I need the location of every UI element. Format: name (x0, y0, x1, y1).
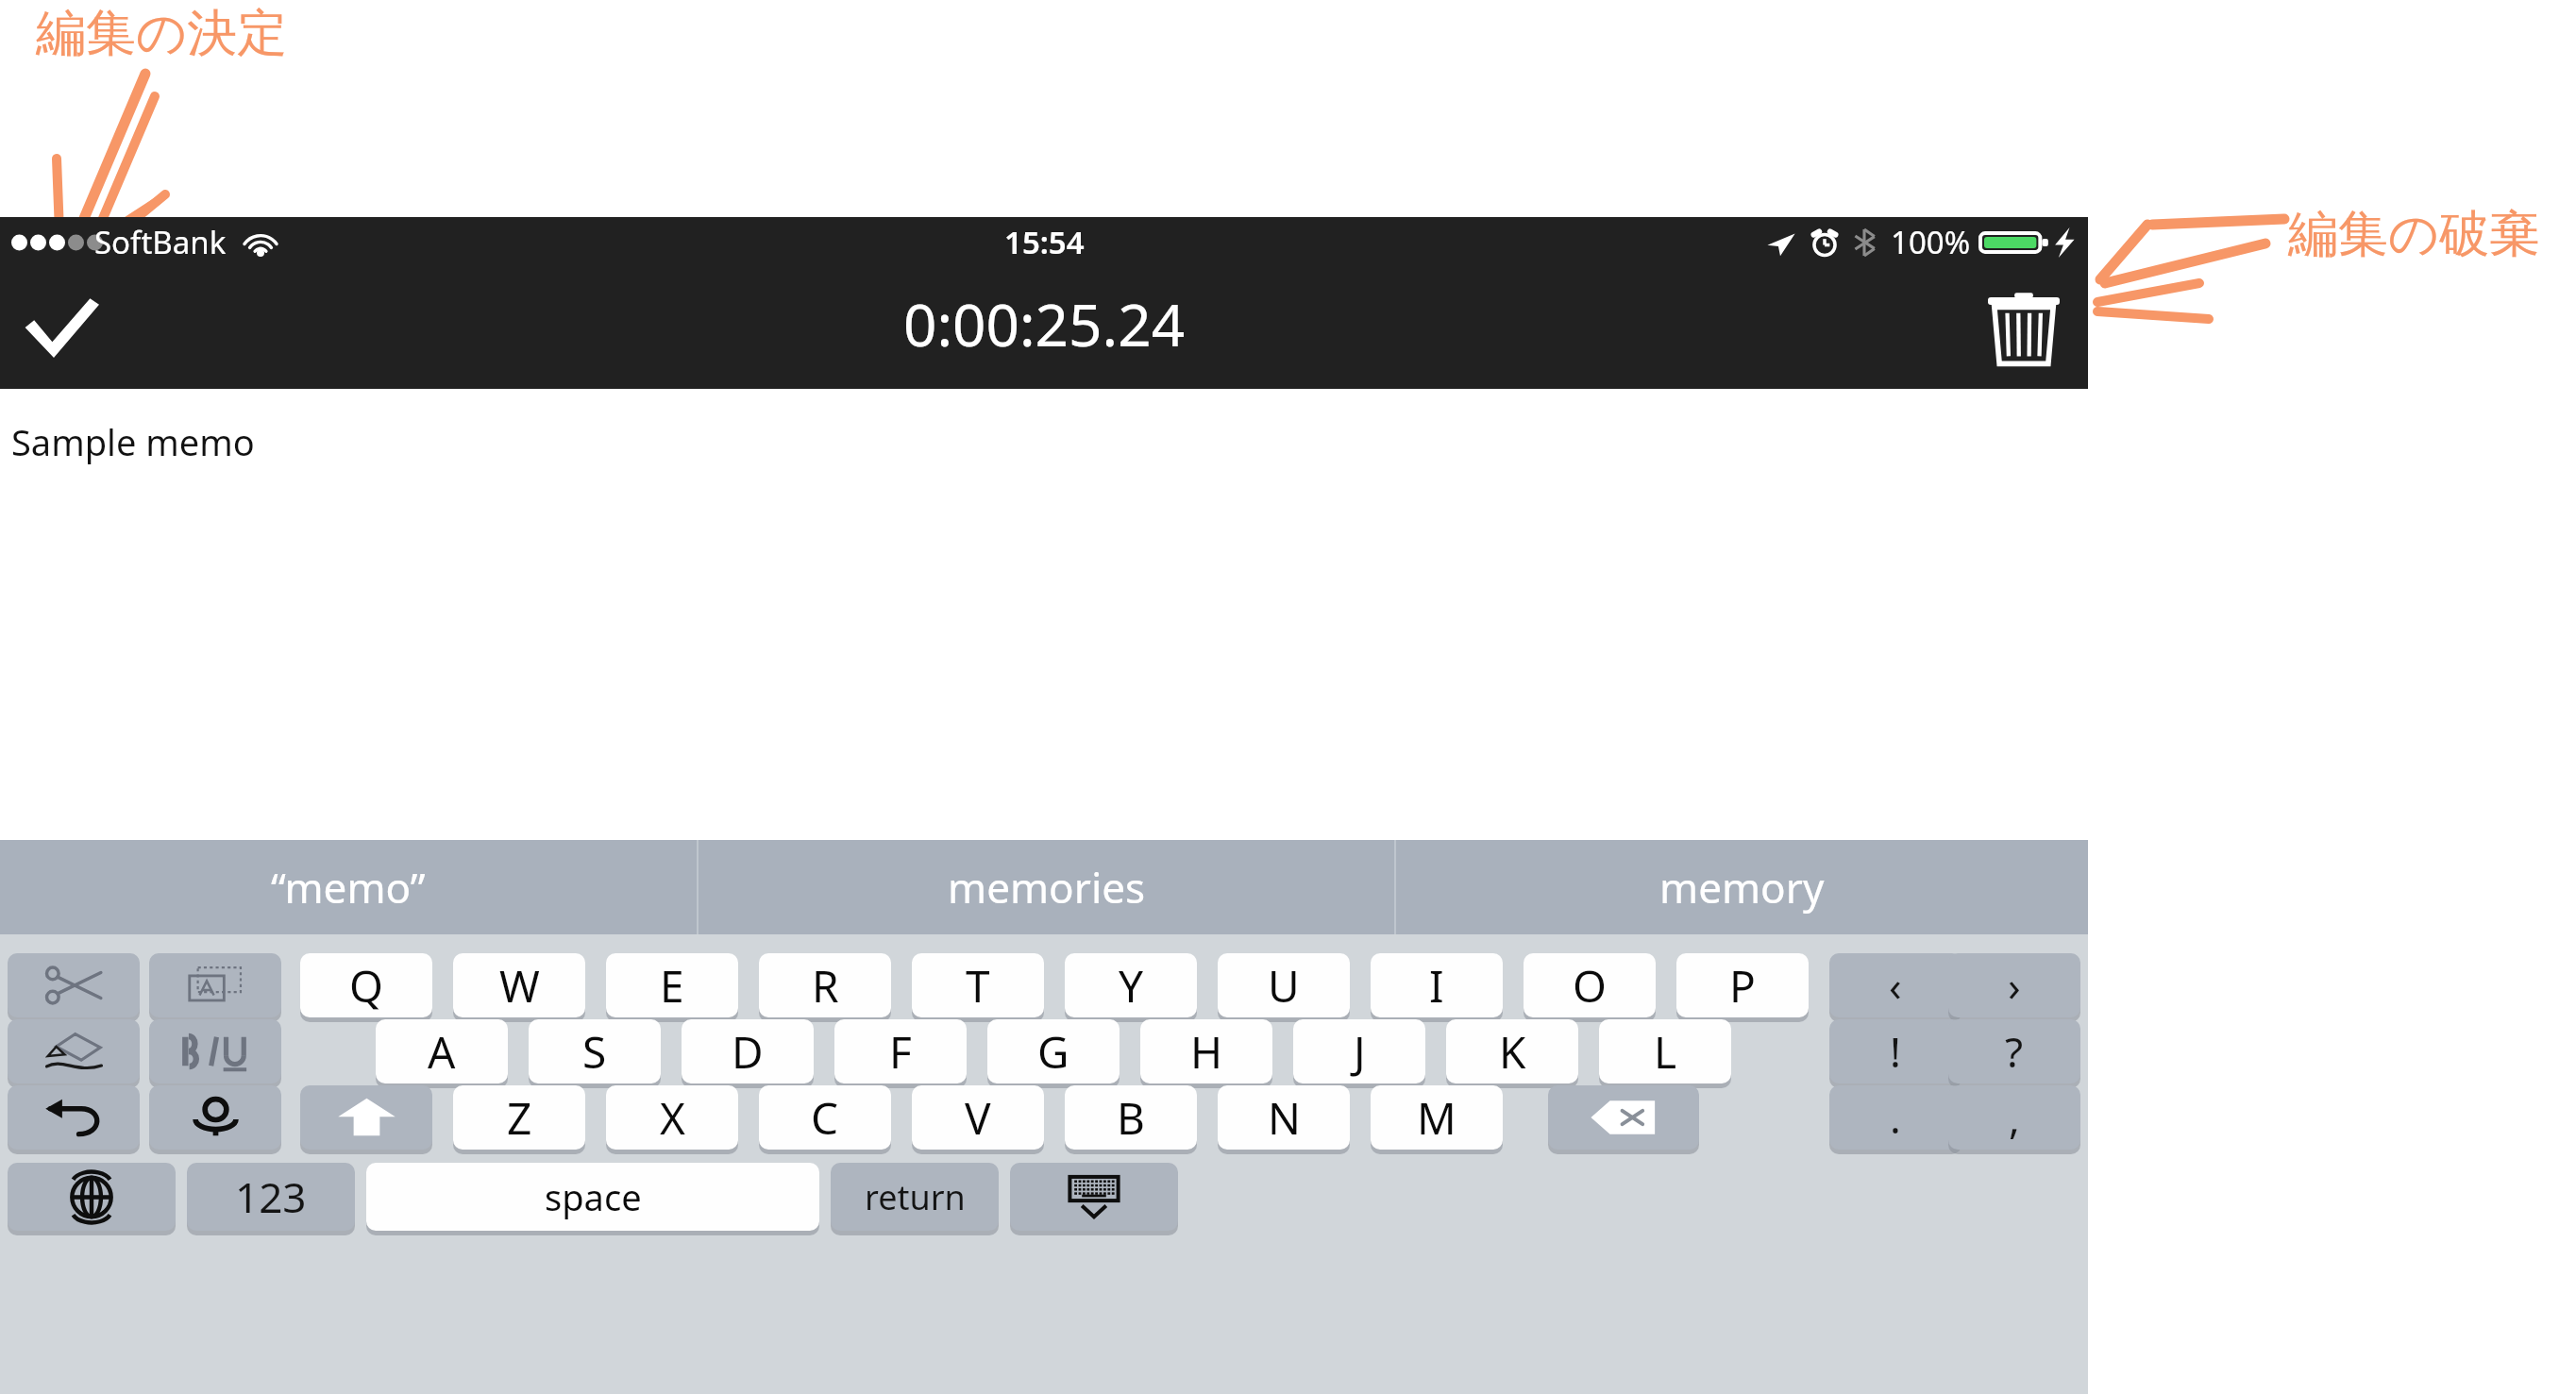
staticText: 123 (235, 1168, 307, 1225)
staticText: P (1729, 956, 1756, 1016)
staticText: V (965, 1088, 991, 1148)
button[interactable]: I (1371, 953, 1503, 1017)
staticText: 15:54 (1004, 221, 1085, 263)
button[interactable]: J (1293, 1019, 1425, 1083)
staticText: H (1190, 1022, 1223, 1082)
button[interactable] (1010, 1163, 1178, 1231)
button[interactable]: ‹ (1829, 953, 1961, 1017)
staticText: memory (1659, 859, 1825, 915)
button[interactable]: B (1065, 1085, 1197, 1150)
button[interactable]: R (759, 953, 891, 1017)
staticText: ! (1890, 1023, 1901, 1080)
button[interactable]: C (759, 1085, 891, 1150)
button[interactable]: N (1218, 1085, 1350, 1150)
staticText: W (499, 956, 540, 1016)
staticText: F (889, 1022, 912, 1082)
button[interactable]: H (1140, 1019, 1272, 1083)
staticText: , (2009, 1089, 2020, 1146)
button[interactable]: W (453, 953, 585, 1017)
button[interactable]: X (606, 1085, 738, 1150)
button[interactable]: return (831, 1163, 999, 1231)
button[interactable] (149, 1019, 281, 1083)
staticText: Y (1119, 956, 1144, 1016)
button[interactable]: F (834, 1019, 967, 1083)
button[interactable]: P (1676, 953, 1809, 1017)
staticText: 0:00:25.24 (903, 284, 1186, 363)
button[interactable]: . (1829, 1085, 1961, 1150)
button[interactable]: memories (699, 840, 1394, 934)
staticText: X (660, 1088, 685, 1148)
button[interactable] (8, 1019, 140, 1083)
button[interactable]: Q (300, 953, 432, 1017)
button[interactable]: U (1218, 953, 1350, 1017)
staticText: ‹ (1889, 957, 1902, 1014)
staticText: O (1573, 956, 1607, 1016)
button[interactable] (8, 953, 140, 1017)
button[interactable]: K (1446, 1019, 1578, 1083)
button[interactable]: , (1948, 1085, 2080, 1150)
staticText: 100% (1891, 221, 1971, 263)
staticText: K (1499, 1022, 1526, 1082)
staticText: N (1268, 1088, 1301, 1148)
button[interactable]: G (987, 1019, 1120, 1083)
button[interactable] (149, 953, 281, 1017)
staticText: R (812, 956, 839, 1016)
staticText: L (1654, 1022, 1677, 1082)
button[interactable]: Confirm edit (9, 276, 113, 379)
staticText: U (1268, 956, 1300, 1016)
button[interactable] (1548, 1085, 1699, 1150)
button[interactable]: A (376, 1019, 508, 1083)
staticText: Sample memo (11, 417, 255, 466)
staticText: SoftBank (94, 221, 227, 263)
staticText: I (1429, 956, 1444, 1016)
button[interactable]: memory (1396, 840, 2088, 934)
button[interactable]: Z (453, 1085, 585, 1150)
button[interactable]: Y (1065, 953, 1197, 1017)
button[interactable]: S (529, 1019, 661, 1083)
staticText: A (428, 1022, 456, 1082)
staticText: E (660, 956, 684, 1016)
button[interactable]: 123 (187, 1163, 355, 1231)
button[interactable]: ? (1948, 1019, 2080, 1083)
button[interactable] (300, 1085, 432, 1150)
staticText: “memo” (271, 859, 426, 915)
staticText: . (1890, 1089, 1901, 1146)
button[interactable]: D (682, 1019, 814, 1083)
button[interactable]: V (912, 1085, 1044, 1150)
button[interactable]: M (1371, 1085, 1503, 1150)
staticText: G (1037, 1022, 1069, 1082)
staticText: 編集の破棄 (2288, 203, 2540, 266)
staticText: Q (349, 956, 383, 1016)
button[interactable]: › (1948, 953, 2080, 1017)
button[interactable] (8, 1163, 176, 1231)
button[interactable]: T (912, 953, 1044, 1017)
staticText: ? (2005, 1023, 2024, 1080)
button[interactable]: ! (1829, 1019, 1961, 1083)
staticText: › (2008, 957, 2021, 1014)
staticText: S (582, 1022, 607, 1082)
staticText: J (1354, 1022, 1366, 1082)
staticText: M (1417, 1088, 1456, 1148)
button[interactable]: space (366, 1163, 819, 1231)
staticText: 編集の決定 (36, 2, 288, 65)
button[interactable]: O (1524, 953, 1656, 1017)
button[interactable]: L (1599, 1019, 1731, 1083)
staticText: Z (507, 1088, 532, 1148)
button[interactable]: Discard edit (1977, 280, 2071, 375)
staticText: memories (948, 859, 1146, 915)
staticText: return (865, 1174, 966, 1220)
button[interactable] (8, 1085, 140, 1150)
button[interactable] (149, 1085, 281, 1150)
staticText: space (545, 1172, 642, 1221)
button[interactable]: “memo” (0, 840, 697, 934)
staticText: T (966, 956, 990, 1016)
staticText: C (811, 1088, 839, 1148)
button[interactable]: E (606, 953, 738, 1017)
staticText: D (732, 1022, 764, 1082)
staticText: B (1117, 1088, 1145, 1148)
